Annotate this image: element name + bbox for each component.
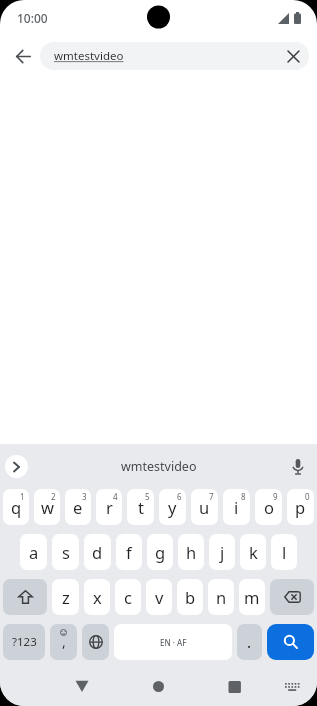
- button[interactable]: [287, 456, 309, 478]
- button[interactable]: r: [96, 489, 122, 525]
- staticText: 5: [145, 491, 150, 502]
- staticText: 2: [51, 491, 56, 502]
- staticText: a: [29, 541, 39, 563]
- button[interactable]: g: [147, 534, 173, 570]
- staticText: 7: [209, 491, 214, 502]
- staticText: n: [216, 586, 227, 608]
- button[interactable]: wmtestvideo: [121, 458, 197, 475]
- button[interactable]: a: [20, 534, 47, 570]
- staticText: z: [62, 586, 70, 608]
- staticText: v: [155, 586, 164, 608]
- button[interactable]: w: [34, 489, 60, 525]
- staticText: o: [264, 496, 274, 518]
- button[interactable]: EN · AF: [114, 624, 232, 660]
- button[interactable]: q: [3, 489, 29, 525]
- staticText: r: [106, 496, 113, 518]
- staticText: g: [155, 541, 166, 563]
- button[interactable]: [82, 624, 109, 660]
- button[interactable]: ?123: [3, 624, 45, 660]
- staticText: u: [199, 496, 210, 518]
- button[interactable]: t: [127, 489, 154, 525]
- staticText: 3: [82, 491, 87, 502]
- button[interactable]: l: [271, 534, 297, 570]
- staticText: l: [282, 541, 287, 563]
- button[interactable]: o: [255, 489, 282, 525]
- staticText: 6: [177, 491, 182, 502]
- button[interactable]: [8, 41, 38, 71]
- button[interactable]: s: [52, 534, 79, 570]
- staticText: h: [186, 541, 197, 563]
- staticText: x: [93, 586, 102, 608]
- staticText: .: [247, 632, 252, 652]
- button[interactable]: [5, 455, 28, 478]
- button[interactable]: b: [177, 579, 203, 615]
- staticText: 4: [113, 491, 118, 502]
- staticText: ?123: [12, 634, 37, 650]
- button[interactable]: v: [146, 579, 172, 615]
- staticText: 0: [305, 491, 310, 502]
- button[interactable]: c: [115, 579, 141, 615]
- staticText: 1: [20, 491, 25, 502]
- staticText: 10:00: [17, 10, 48, 26]
- button[interactable]: [270, 579, 314, 615]
- button[interactable]: k: [240, 534, 266, 570]
- staticText: e: [73, 496, 83, 518]
- staticText: m: [244, 586, 260, 608]
- staticText: c: [124, 586, 132, 608]
- staticText: 8: [241, 491, 246, 502]
- button[interactable]: ,: [50, 624, 77, 660]
- staticText: y: [168, 496, 177, 518]
- staticText: t: [138, 496, 144, 518]
- staticText: wmtestvideo: [54, 48, 124, 64]
- button[interactable]: d: [84, 534, 111, 570]
- staticText: w: [41, 496, 54, 518]
- staticText: s: [62, 541, 70, 563]
- button[interactable]: [223, 671, 247, 695]
- button[interactable]: [281, 44, 305, 68]
- staticText: k: [249, 541, 258, 563]
- button[interactable]: e: [65, 489, 91, 525]
- staticText: p: [295, 496, 306, 518]
- button[interactable]: wmtestvideo: [40, 42, 309, 70]
- staticText: b: [185, 586, 196, 608]
- staticText: d: [92, 541, 103, 563]
- button[interactable]: [267, 624, 314, 660]
- staticText: ,: [62, 632, 66, 651]
- button[interactable]: h: [178, 534, 204, 570]
- button[interactable]: p: [287, 489, 314, 525]
- button[interactable]: .: [237, 624, 262, 660]
- button[interactable]: [147, 671, 171, 695]
- button[interactable]: z: [52, 579, 79, 615]
- button[interactable]: n: [208, 579, 234, 615]
- button[interactable]: [70, 671, 94, 695]
- staticText: f: [126, 541, 132, 563]
- staticText: i: [234, 496, 239, 518]
- button[interactable]: y: [159, 489, 186, 525]
- button[interactable]: f: [116, 534, 142, 570]
- staticText: j: [220, 541, 225, 563]
- button[interactable]: [3, 579, 47, 615]
- button[interactable]: x: [84, 579, 110, 615]
- button[interactable]: i: [223, 489, 250, 525]
- button[interactable]: j: [209, 534, 235, 570]
- staticText: q: [11, 496, 22, 518]
- staticText: 9: [273, 491, 278, 502]
- button[interactable]: m: [239, 579, 265, 615]
- staticText: EN · AF: [160, 637, 187, 648]
- button[interactable]: u: [191, 489, 218, 525]
- button[interactable]: [285, 671, 309, 695]
